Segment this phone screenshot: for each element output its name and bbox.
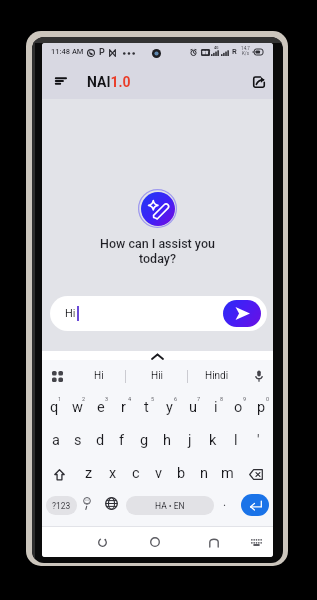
staticText: 3	[105, 396, 109, 402]
staticText: 1	[58, 396, 62, 402]
button[interactable]: j	[178, 425, 201, 458]
button[interactable]: Language	[101, 493, 121, 513]
button[interactable]: '	[247, 425, 270, 458]
staticText: b	[177, 465, 186, 482]
button[interactable]: b	[170, 458, 193, 491]
button[interactable]: Recents	[91, 531, 113, 553]
staticText: e	[97, 399, 105, 416]
button[interactable]: 6	[158, 392, 181, 425]
staticText: v	[155, 465, 163, 482]
button[interactable]: Switch keyboard	[245, 531, 267, 553]
staticText: g	[140, 432, 149, 449]
staticText: 8	[220, 396, 224, 402]
button[interactable]: g	[133, 425, 155, 458]
button[interactable]: Backspace	[239, 458, 273, 491]
staticText: 14.7 K/s	[241, 46, 250, 56]
staticText: p	[257, 399, 266, 416]
button[interactable]: 5	[135, 392, 158, 425]
button[interactable]: n	[193, 458, 216, 491]
staticText: .	[223, 495, 227, 509]
button[interactable]: 8	[204, 392, 227, 425]
staticText: q	[50, 399, 59, 416]
staticText: 9	[243, 396, 247, 402]
button[interactable]: z	[77, 458, 101, 491]
button[interactable]: Shift	[42, 458, 77, 491]
button[interactable]: .	[215, 493, 235, 513]
staticText: How can I assist you today?	[100, 236, 215, 266]
staticText: 2	[82, 396, 86, 402]
staticText: c	[132, 465, 140, 482]
button[interactable]: Emoji	[77, 493, 97, 513]
staticText: 4	[128, 396, 132, 402]
staticText: R	[232, 47, 237, 56]
button[interactable]: m	[216, 458, 239, 491]
staticText: t	[144, 399, 149, 416]
staticText: h	[163, 432, 171, 449]
staticText: '	[257, 432, 260, 449]
staticText: 0	[266, 396, 270, 402]
button[interactable]: HA • EN	[126, 496, 214, 515]
staticText: 7	[197, 396, 201, 402]
button[interactable]: 2	[66, 392, 89, 425]
staticText: i	[214, 399, 218, 416]
button[interactable]: k	[201, 425, 224, 458]
button[interactable]: Voice input	[245, 360, 273, 392]
button[interactable]: Hi	[50, 296, 267, 331]
staticText: Hi	[65, 307, 76, 320]
staticText: x	[109, 465, 117, 482]
button[interactable]: 4	[112, 392, 135, 425]
button[interactable]: Share	[248, 71, 270, 93]
button[interactable]: Hii	[126, 360, 187, 392]
staticText: Hii	[151, 370, 163, 382]
staticText: s	[74, 432, 82, 449]
staticText: k	[209, 432, 217, 449]
staticText: Hindi	[205, 370, 229, 382]
button[interactable]: Enter	[241, 494, 269, 516]
button[interactable]: ?123	[46, 496, 77, 515]
button[interactable]: c	[124, 458, 147, 491]
button[interactable]: h	[155, 425, 178, 458]
button[interactable]: 9	[227, 392, 250, 425]
button[interactable]: f	[111, 425, 133, 458]
button[interactable]: 3	[89, 392, 112, 425]
button[interactable]: Clipboard	[42, 360, 73, 392]
button[interactable]: Hindi	[188, 360, 245, 392]
staticText: P	[99, 47, 105, 58]
staticText: n	[200, 465, 209, 482]
staticText: l	[234, 432, 238, 449]
button[interactable]: s	[67, 425, 89, 458]
button[interactable]: d	[89, 425, 111, 458]
staticText: o	[234, 399, 243, 416]
button[interactable]: l	[224, 425, 247, 458]
staticText: m	[221, 465, 234, 482]
staticText: 5	[151, 396, 155, 402]
button[interactable]: Hi	[73, 360, 125, 392]
staticText: y	[166, 399, 173, 416]
button[interactable]: 0	[250, 392, 273, 425]
button[interactable]: v	[147, 458, 170, 491]
staticText: j	[188, 432, 192, 449]
button[interactable]: Back	[203, 531, 225, 553]
staticText: f	[119, 432, 125, 449]
button[interactable]: x	[101, 458, 124, 491]
button[interactable]: a	[45, 425, 67, 458]
staticText: u	[189, 399, 197, 416]
button[interactable]: Menu	[49, 70, 71, 92]
staticText: ?123	[52, 501, 71, 511]
staticText: w	[72, 399, 83, 416]
staticText: d	[96, 432, 105, 449]
staticText: 4G	[214, 46, 219, 50]
staticText: z	[85, 465, 93, 482]
staticText: Hi	[94, 370, 104, 382]
staticText: NAI1.0	[87, 74, 131, 90]
staticText: 11:48 AM	[51, 47, 84, 56]
button[interactable]: Home	[144, 531, 166, 553]
staticText: a	[52, 432, 60, 449]
staticText: 6	[174, 396, 178, 402]
staticText: r	[121, 399, 126, 416]
button[interactable]: 7	[181, 392, 204, 425]
button[interactable]: 1	[42, 392, 66, 425]
button[interactable]: Send	[223, 300, 261, 327]
staticText: HA • EN	[155, 501, 185, 511]
